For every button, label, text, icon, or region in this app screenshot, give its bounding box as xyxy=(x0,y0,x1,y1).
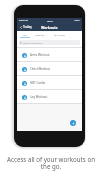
button[interactable]: MY GYMS xyxy=(50,31,68,38)
button[interactable]: Search Workouts xyxy=(19,40,80,45)
button[interactable]: Leg Workout xyxy=(17,90,82,104)
button[interactable]: Today xyxy=(19,25,33,29)
staticText: ALL xyxy=(23,33,28,36)
button[interactable]: HIIT Cardio xyxy=(17,76,82,90)
staticText: 09:41 xyxy=(47,19,54,22)
staticText: 100% xyxy=(74,19,80,22)
button[interactable]: GROUPS xyxy=(32,31,48,38)
button[interactable]: Arms Workout xyxy=(17,48,82,62)
staticText: HIIT Cardio xyxy=(30,81,46,85)
staticText: Search Workouts xyxy=(23,41,43,44)
staticText: Chest Workout xyxy=(30,67,51,71)
staticText: Leg Workout xyxy=(30,95,48,99)
staticText: Workouts xyxy=(41,25,58,30)
staticText: Arms Workout xyxy=(30,53,50,57)
button[interactable]: Chest Workout xyxy=(17,62,82,76)
button[interactable]: ALL xyxy=(19,31,31,38)
staticText: GROUPS xyxy=(35,33,45,36)
staticText: Today xyxy=(23,25,32,29)
staticText: Access all of your workouts on the go. xyxy=(7,155,95,171)
staticText: ORANGE xyxy=(19,19,28,22)
staticText: MY GYMS xyxy=(54,33,65,36)
button[interactable]: Add workout xyxy=(70,120,76,126)
